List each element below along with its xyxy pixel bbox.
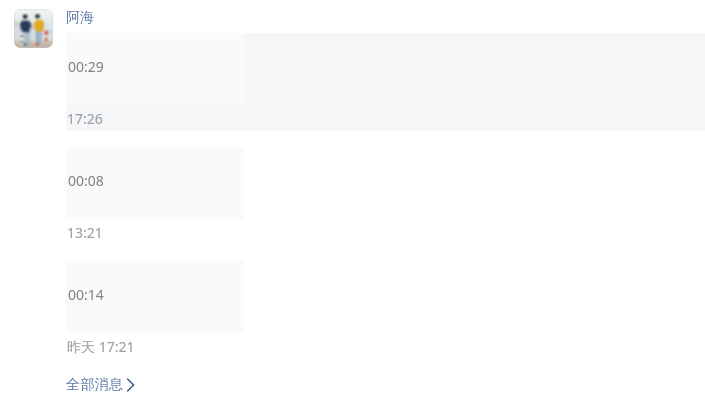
button[interactable]: 阿海 (66, 9, 94, 27)
button[interactable]: 阿海的头像 (14, 9, 53, 48)
button[interactable]: 全部消息 (66, 375, 135, 393)
staticText: 昨天 17:21 (67, 337, 135, 356)
button[interactable]: 00:08 (66, 147, 244, 219)
staticText: 00:29 (68, 57, 104, 76)
button[interactable]: 00:29 (66, 33, 244, 105)
staticText: 00:08 (68, 171, 104, 190)
staticText: 00:14 (68, 285, 104, 304)
staticText: 17:26 (67, 109, 103, 128)
button[interactable]: 00:14 (66, 261, 244, 333)
staticText: 全部消息 (66, 375, 123, 393)
staticText: 13:21 (67, 223, 103, 242)
